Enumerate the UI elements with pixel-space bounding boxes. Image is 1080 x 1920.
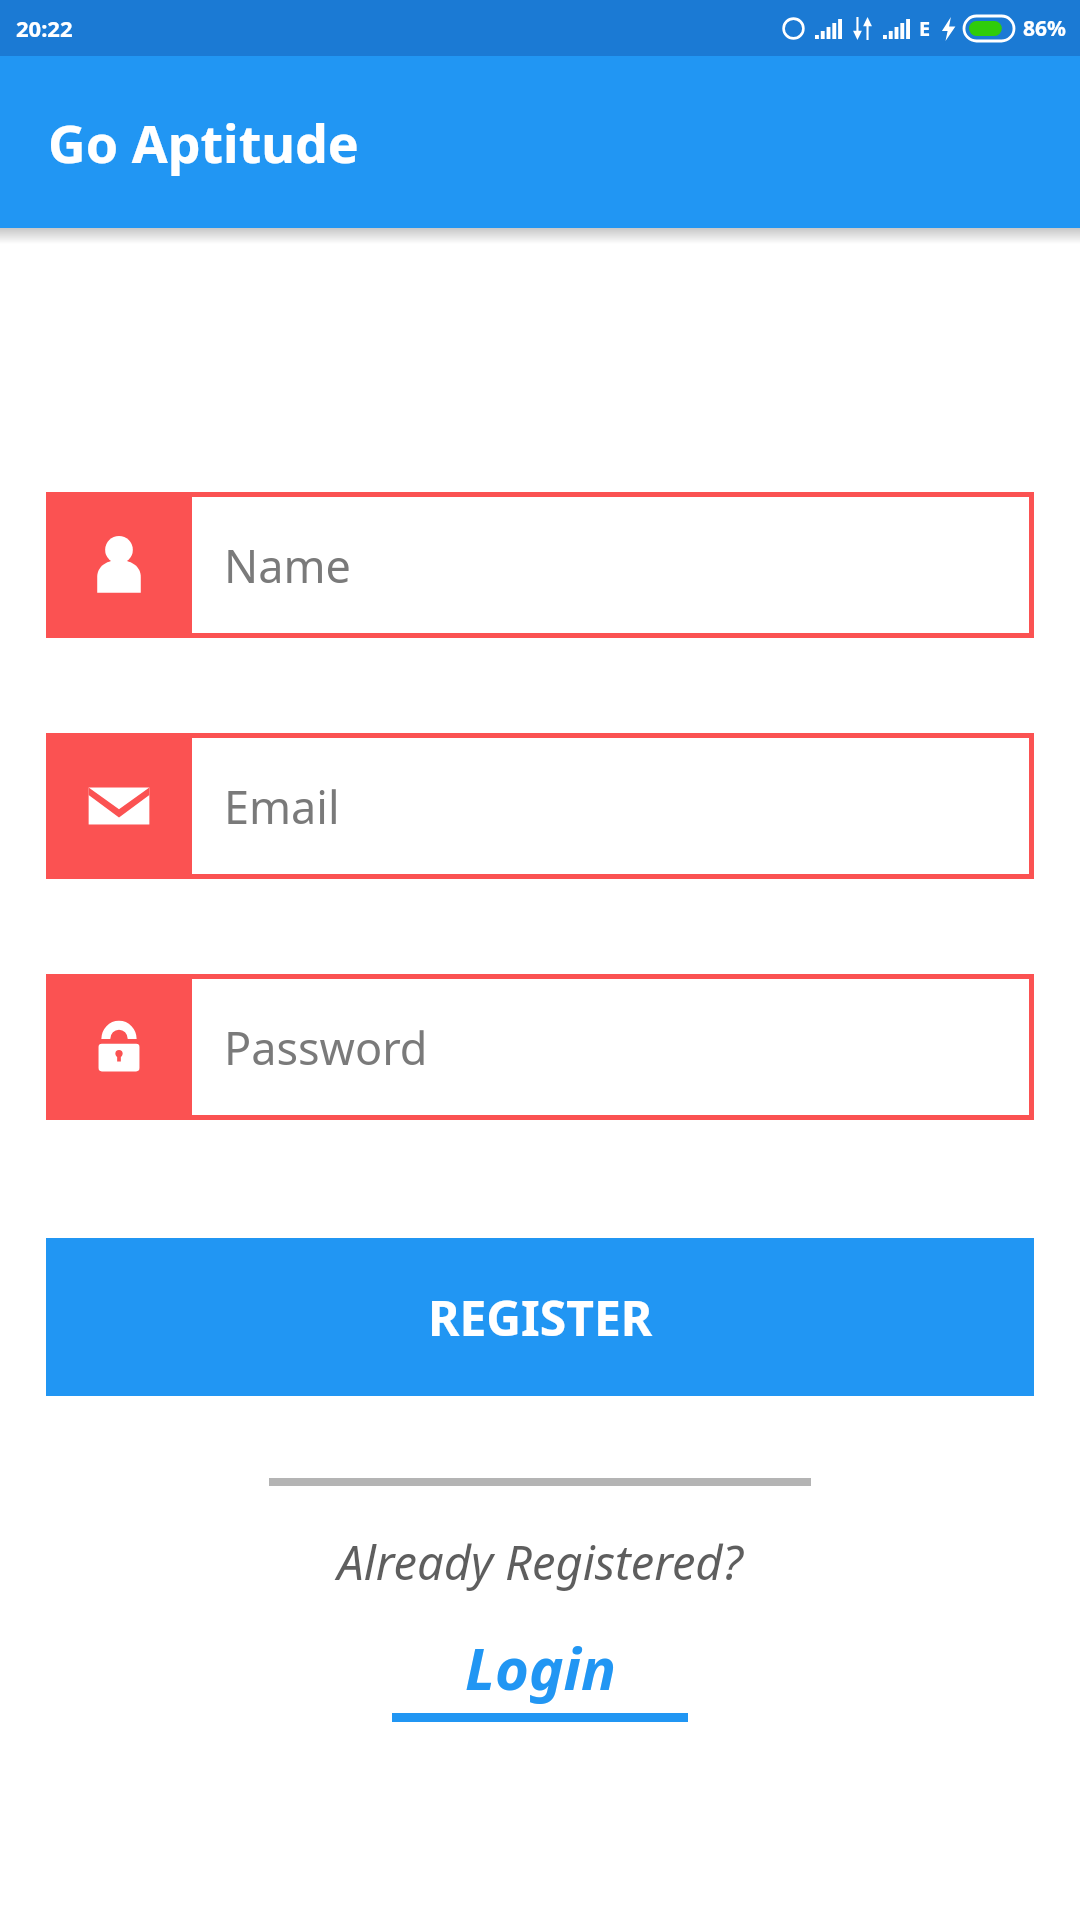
button[interactable]: Login xyxy=(392,1628,688,1722)
staticText: Already Registered? xyxy=(0,1530,1080,1594)
staticText: REGISTER xyxy=(428,1285,653,1350)
button[interactable]: Email input field xyxy=(46,733,1034,879)
staticText: 20:22 xyxy=(16,13,73,43)
staticText: Password xyxy=(224,1017,428,1078)
staticText: Email xyxy=(224,776,340,837)
staticText: E xyxy=(919,15,931,42)
staticText: Login xyxy=(465,1628,616,1707)
staticText: 86% xyxy=(1023,14,1066,43)
button[interactable]: Password input field xyxy=(46,974,1034,1120)
button[interactable]: REGISTER xyxy=(46,1238,1034,1396)
staticText: Go Aptitude xyxy=(48,107,359,178)
button[interactable]: Name input field xyxy=(46,492,1034,638)
staticText: Name xyxy=(224,535,351,596)
